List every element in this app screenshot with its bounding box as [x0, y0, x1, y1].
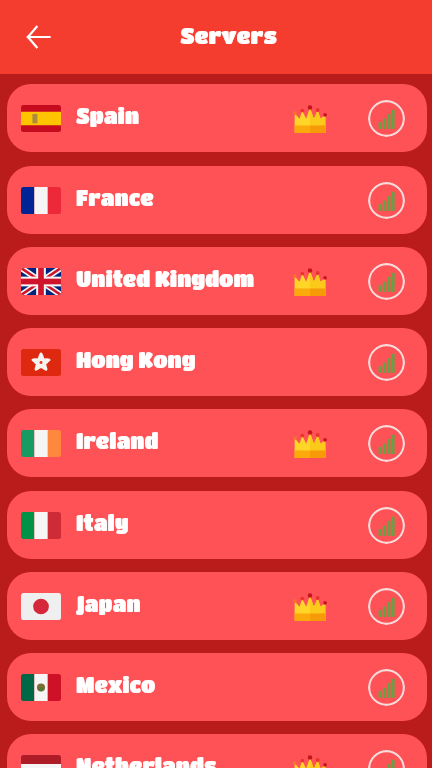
staticText: Mexico	[76, 673, 156, 697]
staticText: Japan	[76, 592, 141, 616]
button[interactable]: Hong Kong	[7, 328, 427, 396]
button[interactable]: Signal strength	[368, 425, 405, 462]
staticText: United Kingdom	[76, 267, 255, 291]
button[interactable]: Italy	[7, 491, 427, 559]
button[interactable]: France	[7, 166, 427, 234]
button[interactable]: Signal strength	[368, 100, 405, 137]
button[interactable]: United Kingdom	[7, 247, 427, 315]
staticText: Servers	[180, 23, 277, 48]
button[interactable]: Mexico	[7, 653, 427, 721]
staticText: Ireland	[76, 429, 159, 453]
staticText: Netherlands	[76, 754, 217, 768]
button[interactable]: Signal strength	[368, 263, 405, 300]
button[interactable]: Signal strength	[368, 507, 405, 544]
button[interactable]: Spain	[7, 84, 427, 152]
staticText: Hong Kong	[76, 348, 196, 372]
staticText: Italy	[76, 511, 129, 535]
button[interactable]: Netherlands	[7, 734, 427, 768]
button[interactable]: Signal strength	[368, 669, 405, 706]
button[interactable]: Back	[15, 13, 62, 60]
button[interactable]: Ireland	[7, 409, 427, 477]
button[interactable]: Japan	[7, 572, 427, 640]
button[interactable]: Signal strength	[368, 750, 405, 768]
button[interactable]: Signal strength	[368, 182, 405, 219]
button[interactable]: Signal strength	[368, 588, 405, 625]
button[interactable]: Signal strength	[368, 344, 405, 381]
staticText: France	[76, 186, 154, 210]
staticText: Spain	[76, 104, 140, 128]
